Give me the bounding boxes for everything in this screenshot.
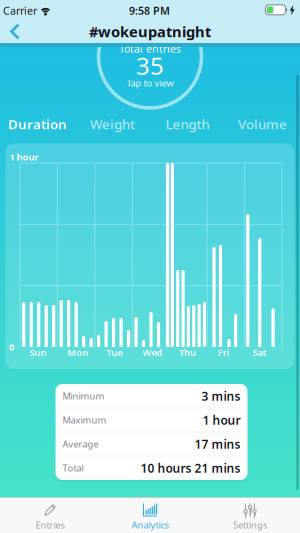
staticText: Sat xyxy=(252,346,266,359)
staticText: Analytics xyxy=(131,519,168,531)
staticText: Tap to view xyxy=(126,77,173,89)
staticText: Carrier xyxy=(3,3,37,18)
staticText: Sun xyxy=(29,346,46,359)
button[interactable]: Settings xyxy=(220,499,280,532)
button[interactable]: Back xyxy=(5,21,25,41)
staticText: #wokeupatnight xyxy=(89,22,211,41)
staticText: Tue xyxy=(106,346,122,359)
staticText: Volume xyxy=(238,115,287,133)
staticText: Weight xyxy=(90,115,135,133)
staticText: 1 hour xyxy=(202,412,240,428)
staticText: 35 xyxy=(136,50,164,81)
staticText: Thu xyxy=(179,346,196,359)
staticText: Wed xyxy=(142,346,162,359)
staticText: Minimum xyxy=(62,390,104,402)
staticText: Total xyxy=(62,462,83,474)
button[interactable]: Length xyxy=(150,113,225,135)
staticText: Length xyxy=(165,115,209,133)
staticText: Duration xyxy=(8,115,67,133)
staticText: 1 hour xyxy=(9,151,38,163)
button[interactable]: Duration xyxy=(0,113,75,135)
button[interactable]: Volume xyxy=(225,113,300,135)
button[interactable]: Entries xyxy=(20,499,80,532)
button[interactable]: Total entries xyxy=(98,5,201,108)
staticText: Total entries xyxy=(119,41,181,56)
staticText: 0 xyxy=(9,341,14,353)
button[interactable]: Analytics xyxy=(120,499,180,532)
button[interactable]: Weight xyxy=(75,113,150,135)
staticText: Settings xyxy=(233,519,267,531)
staticText: Maximum xyxy=(62,414,106,426)
staticText: Entries xyxy=(35,519,64,531)
staticText: 17 mins xyxy=(194,436,240,452)
staticText: Mon xyxy=(67,346,88,359)
staticText: Fri xyxy=(218,346,230,359)
staticText: 9:58 PM xyxy=(129,3,170,18)
staticText: 3 mins xyxy=(201,388,240,404)
staticText: Average xyxy=(62,438,98,450)
staticText: 10 hours 21 mins xyxy=(140,460,240,476)
